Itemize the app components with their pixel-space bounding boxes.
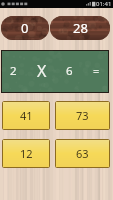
button[interactable]: 63 xyxy=(56,140,109,167)
button[interactable]: 0 xyxy=(1,16,49,40)
staticText: 41 xyxy=(20,108,33,123)
staticText: 0 xyxy=(21,19,29,37)
staticText: 2 xyxy=(10,63,17,79)
button[interactable]: 2 xyxy=(2,51,108,92)
staticText: 63 xyxy=(76,146,89,161)
button[interactable]: 28 xyxy=(50,16,110,40)
button[interactable]: 73 xyxy=(56,102,109,129)
button[interactable]: 12 xyxy=(3,140,49,167)
staticText: 6 xyxy=(66,63,73,79)
staticText: = xyxy=(93,63,100,78)
button[interactable]: 41 xyxy=(3,102,49,129)
staticText: X xyxy=(37,60,47,82)
staticText: 73 xyxy=(76,108,89,123)
staticText: 01:41 xyxy=(96,0,112,8)
staticText: 28 xyxy=(73,19,88,37)
staticText: 12 xyxy=(20,146,33,161)
